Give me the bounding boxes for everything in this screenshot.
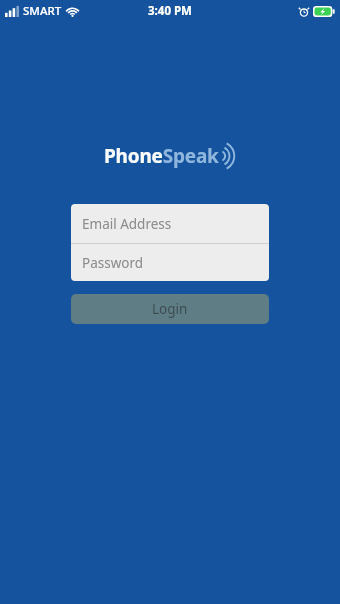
staticText: SMART xyxy=(23,3,62,19)
staticText: 3:40 PM xyxy=(148,3,192,19)
staticText: Email Address xyxy=(82,215,172,233)
button[interactable]: Password xyxy=(71,244,269,281)
button[interactable]: Email Address xyxy=(71,204,269,243)
button[interactable]: Login xyxy=(71,294,269,324)
staticText: Login xyxy=(152,300,188,318)
staticText: Password xyxy=(82,254,144,272)
staticText: PhoneSpeak xyxy=(104,143,219,169)
